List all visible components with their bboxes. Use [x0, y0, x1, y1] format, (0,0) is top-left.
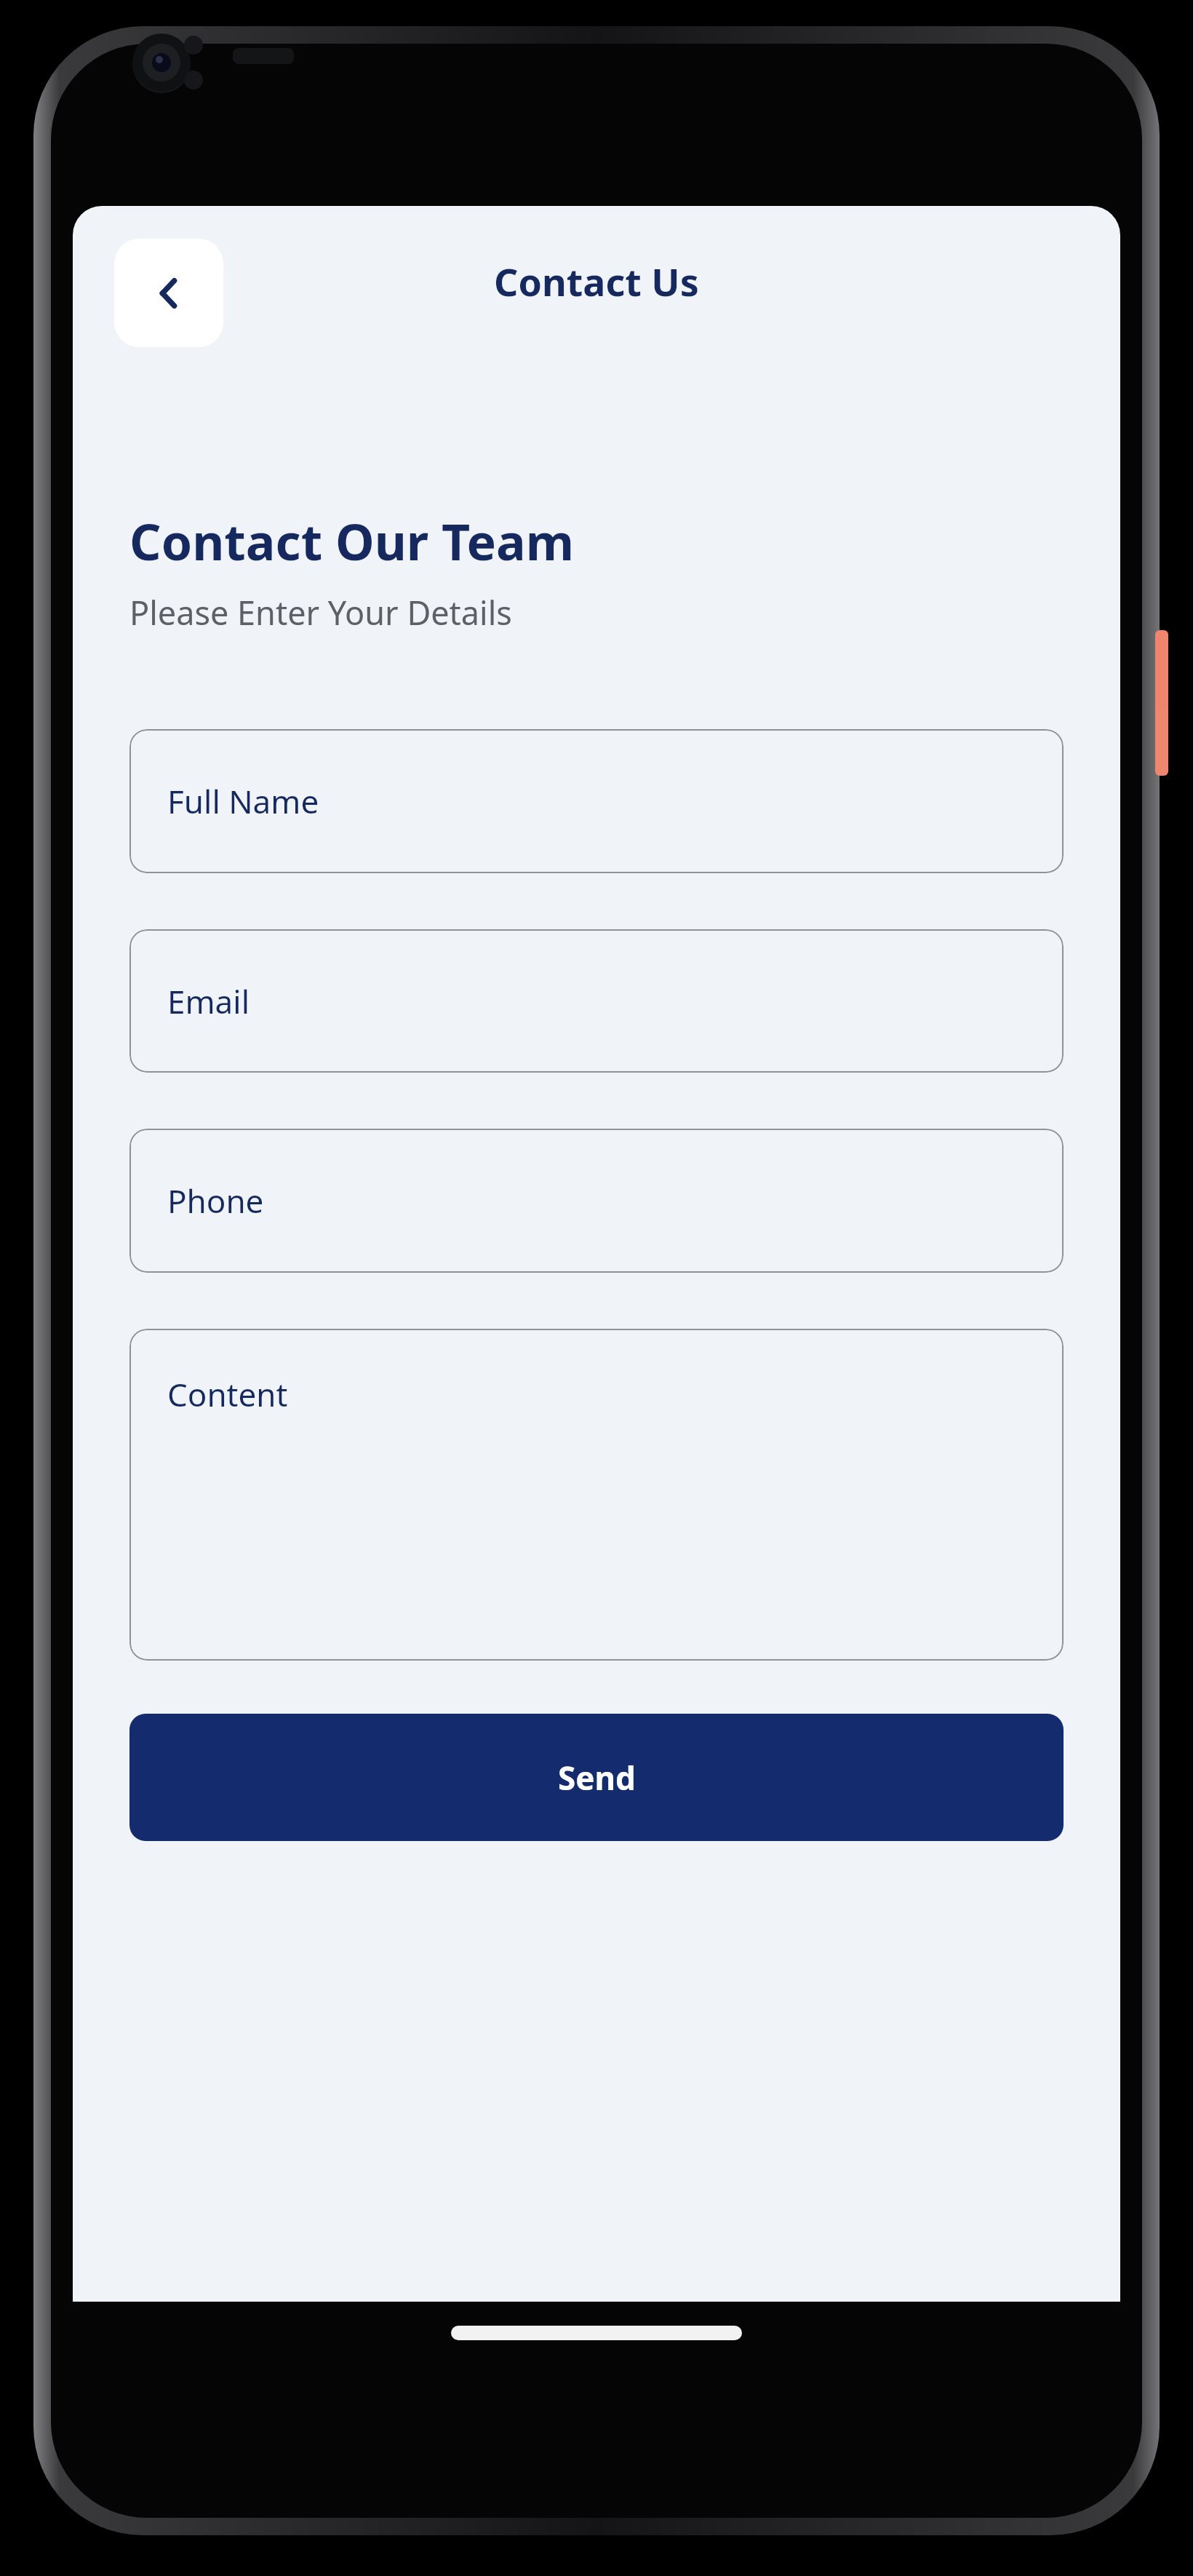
button[interactable]: Phone [129, 1129, 1064, 1273]
staticText: Phone [167, 1179, 264, 1223]
staticText: Content [167, 1372, 288, 1416]
button[interactable]: Back [114, 239, 223, 347]
staticText: Send [558, 1756, 636, 1800]
button[interactable]: Send [129, 1714, 1064, 1841]
staticText: Contact Our Team [129, 507, 575, 575]
button[interactable]: Full Name [129, 729, 1064, 873]
staticText: Full Name [167, 779, 319, 823]
staticText: Contact Us [494, 255, 699, 307]
staticText: Email [167, 979, 250, 1023]
staticText: Please Enter Your Details [129, 590, 512, 635]
button[interactable]: Email [129, 929, 1064, 1073]
button[interactable]: Content [129, 1329, 1064, 1661]
